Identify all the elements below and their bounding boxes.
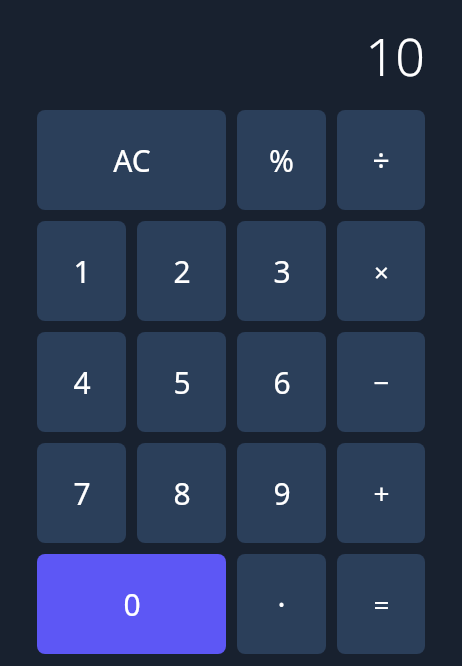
button[interactable]: 8: [137, 443, 226, 543]
staticText: 3: [273, 251, 291, 292]
button[interactable]: ·: [237, 554, 326, 654]
staticText: ×: [374, 254, 389, 289]
staticText: AC: [113, 140, 151, 181]
staticText: =: [373, 585, 390, 623]
button[interactable]: 2: [137, 221, 226, 321]
button[interactable]: 7: [37, 443, 126, 543]
button[interactable]: 3: [237, 221, 326, 321]
button[interactable]: −: [337, 332, 425, 432]
button[interactable]: %: [237, 110, 326, 210]
staticText: +: [373, 474, 390, 512]
staticText: 1: [73, 251, 91, 292]
staticText: 4: [73, 362, 91, 403]
staticText: %: [269, 140, 294, 181]
staticText: 0: [123, 584, 141, 625]
button[interactable]: AC: [37, 110, 226, 210]
button[interactable]: 1: [37, 221, 126, 321]
button[interactable]: 0: [37, 554, 226, 654]
staticText: ÷: [372, 140, 390, 181]
staticText: 7: [73, 473, 91, 514]
button[interactable]: =: [337, 554, 425, 654]
button[interactable]: ×: [337, 221, 425, 321]
staticText: 6: [273, 362, 291, 403]
staticText: 10: [365, 20, 425, 91]
staticText: 2: [173, 251, 191, 292]
staticText: −: [373, 363, 390, 401]
button[interactable]: 9: [237, 443, 326, 543]
staticText: 8: [173, 473, 191, 514]
button[interactable]: +: [337, 443, 425, 543]
button[interactable]: 4: [37, 332, 126, 432]
staticText: 5: [173, 362, 191, 403]
button[interactable]: 5: [137, 332, 226, 432]
staticText: 9: [273, 473, 291, 514]
button[interactable]: 6: [237, 332, 326, 432]
button[interactable]: ÷: [337, 110, 425, 210]
staticText: ·: [277, 584, 286, 625]
